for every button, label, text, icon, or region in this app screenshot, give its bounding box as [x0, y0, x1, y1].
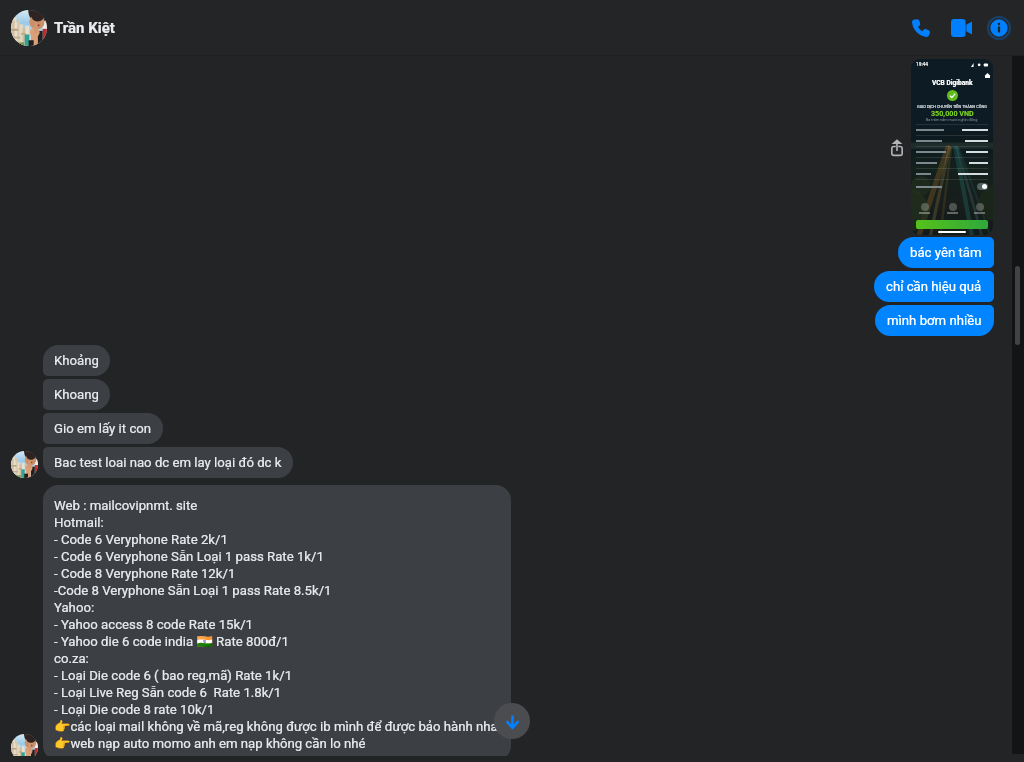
button[interactable]: Conversation information: [980, 9, 1018, 47]
staticText: Khoang: [54, 387, 99, 402]
staticText: Web : mailcovipnmt. site Hotmail: - Code…: [54, 498, 498, 752]
staticText: VCB Digibank: [932, 79, 973, 87]
button[interactable]: Forward message: [891, 139, 903, 156]
staticText: chỉ cần hiệu quả: [886, 279, 982, 294]
staticText: 350,000 VND: [931, 109, 974, 117]
button[interactable]: Khoang: [43, 379, 110, 410]
button[interactable]: Bac test loai nao dc em lay loại đó dc k: [43, 447, 293, 478]
staticText: Gio em lấy it con: [54, 421, 152, 436]
button[interactable]: Web : mailcovipnmt. site Hotmail: - Code…: [43, 485, 511, 756]
button[interactable]: Photo attachment: [911, 59, 993, 235]
staticText: 19:44: [916, 62, 928, 68]
staticText: Trần Kiệt: [54, 19, 115, 37]
button[interactable]: chỉ cần hiệu quả: [874, 271, 994, 302]
button[interactable]: mình bơm nhiều: [875, 305, 994, 336]
staticText: bác yên tâm: [910, 245, 982, 260]
staticText: Khoảng: [54, 353, 99, 368]
staticText: mình bơm nhiều: [887, 313, 982, 328]
button[interactable]: Scroll to bottom: [494, 703, 530, 739]
staticText: GIAO DỊCH CHUYỂN TIỀN THÀNH CÔNG: [917, 104, 987, 109]
button[interactable]: Khoảng: [43, 345, 110, 376]
button[interactable]: Gio em lấy it con: [43, 413, 163, 444]
button[interactable]: Video call: [942, 9, 980, 47]
staticText: Bac test loai nao dc em lay loại đó dc k: [54, 455, 282, 470]
staticText: Ba trăm năm mươi nghìn đồng: [926, 117, 978, 121]
button[interactable]: Trần Kiệt: [0, 10, 115, 46]
button[interactable]: Voice call: [902, 9, 940, 47]
button[interactable]: bác yên tâm: [898, 237, 994, 268]
